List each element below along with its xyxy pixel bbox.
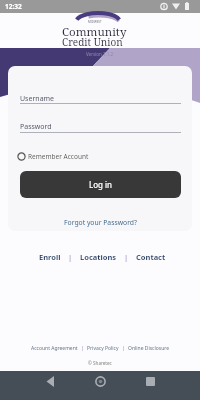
button[interactable] xyxy=(0,371,66,400)
staticText: Remember Account xyxy=(28,152,89,161)
button[interactable]: Contact xyxy=(136,252,166,262)
button[interactable]: Remember Account xyxy=(17,152,89,161)
staticText: Community xyxy=(62,24,127,40)
button[interactable]: Enroll xyxy=(39,252,61,262)
staticText: Credit Union xyxy=(62,35,123,49)
button[interactable] xyxy=(20,92,181,105)
button[interactable]: Account Agreement xyxy=(31,345,78,352)
staticText: | xyxy=(124,252,129,262)
button[interactable] xyxy=(133,371,200,400)
staticText: Username xyxy=(20,94,55,104)
button[interactable]: Forgot your Password? xyxy=(64,218,137,227)
staticText: © Sharetec xyxy=(88,360,112,366)
button[interactable]: Online Disclosure xyxy=(128,345,170,352)
button[interactable]: Log in xyxy=(20,171,181,198)
button[interactable]: Locations xyxy=(80,252,117,262)
staticText: 12:32 xyxy=(5,2,22,11)
button[interactable]: Privacy Policy xyxy=(87,345,119,352)
staticText: | xyxy=(81,345,84,352)
staticText: Version 1.1.2 xyxy=(86,51,114,57)
button[interactable] xyxy=(20,120,181,133)
button[interactable] xyxy=(66,371,133,400)
staticText: | xyxy=(122,345,125,352)
staticText: Password xyxy=(20,122,52,132)
staticText: | xyxy=(68,252,73,262)
staticText: MIDWEST xyxy=(88,20,102,24)
staticText: Log in xyxy=(89,179,113,190)
